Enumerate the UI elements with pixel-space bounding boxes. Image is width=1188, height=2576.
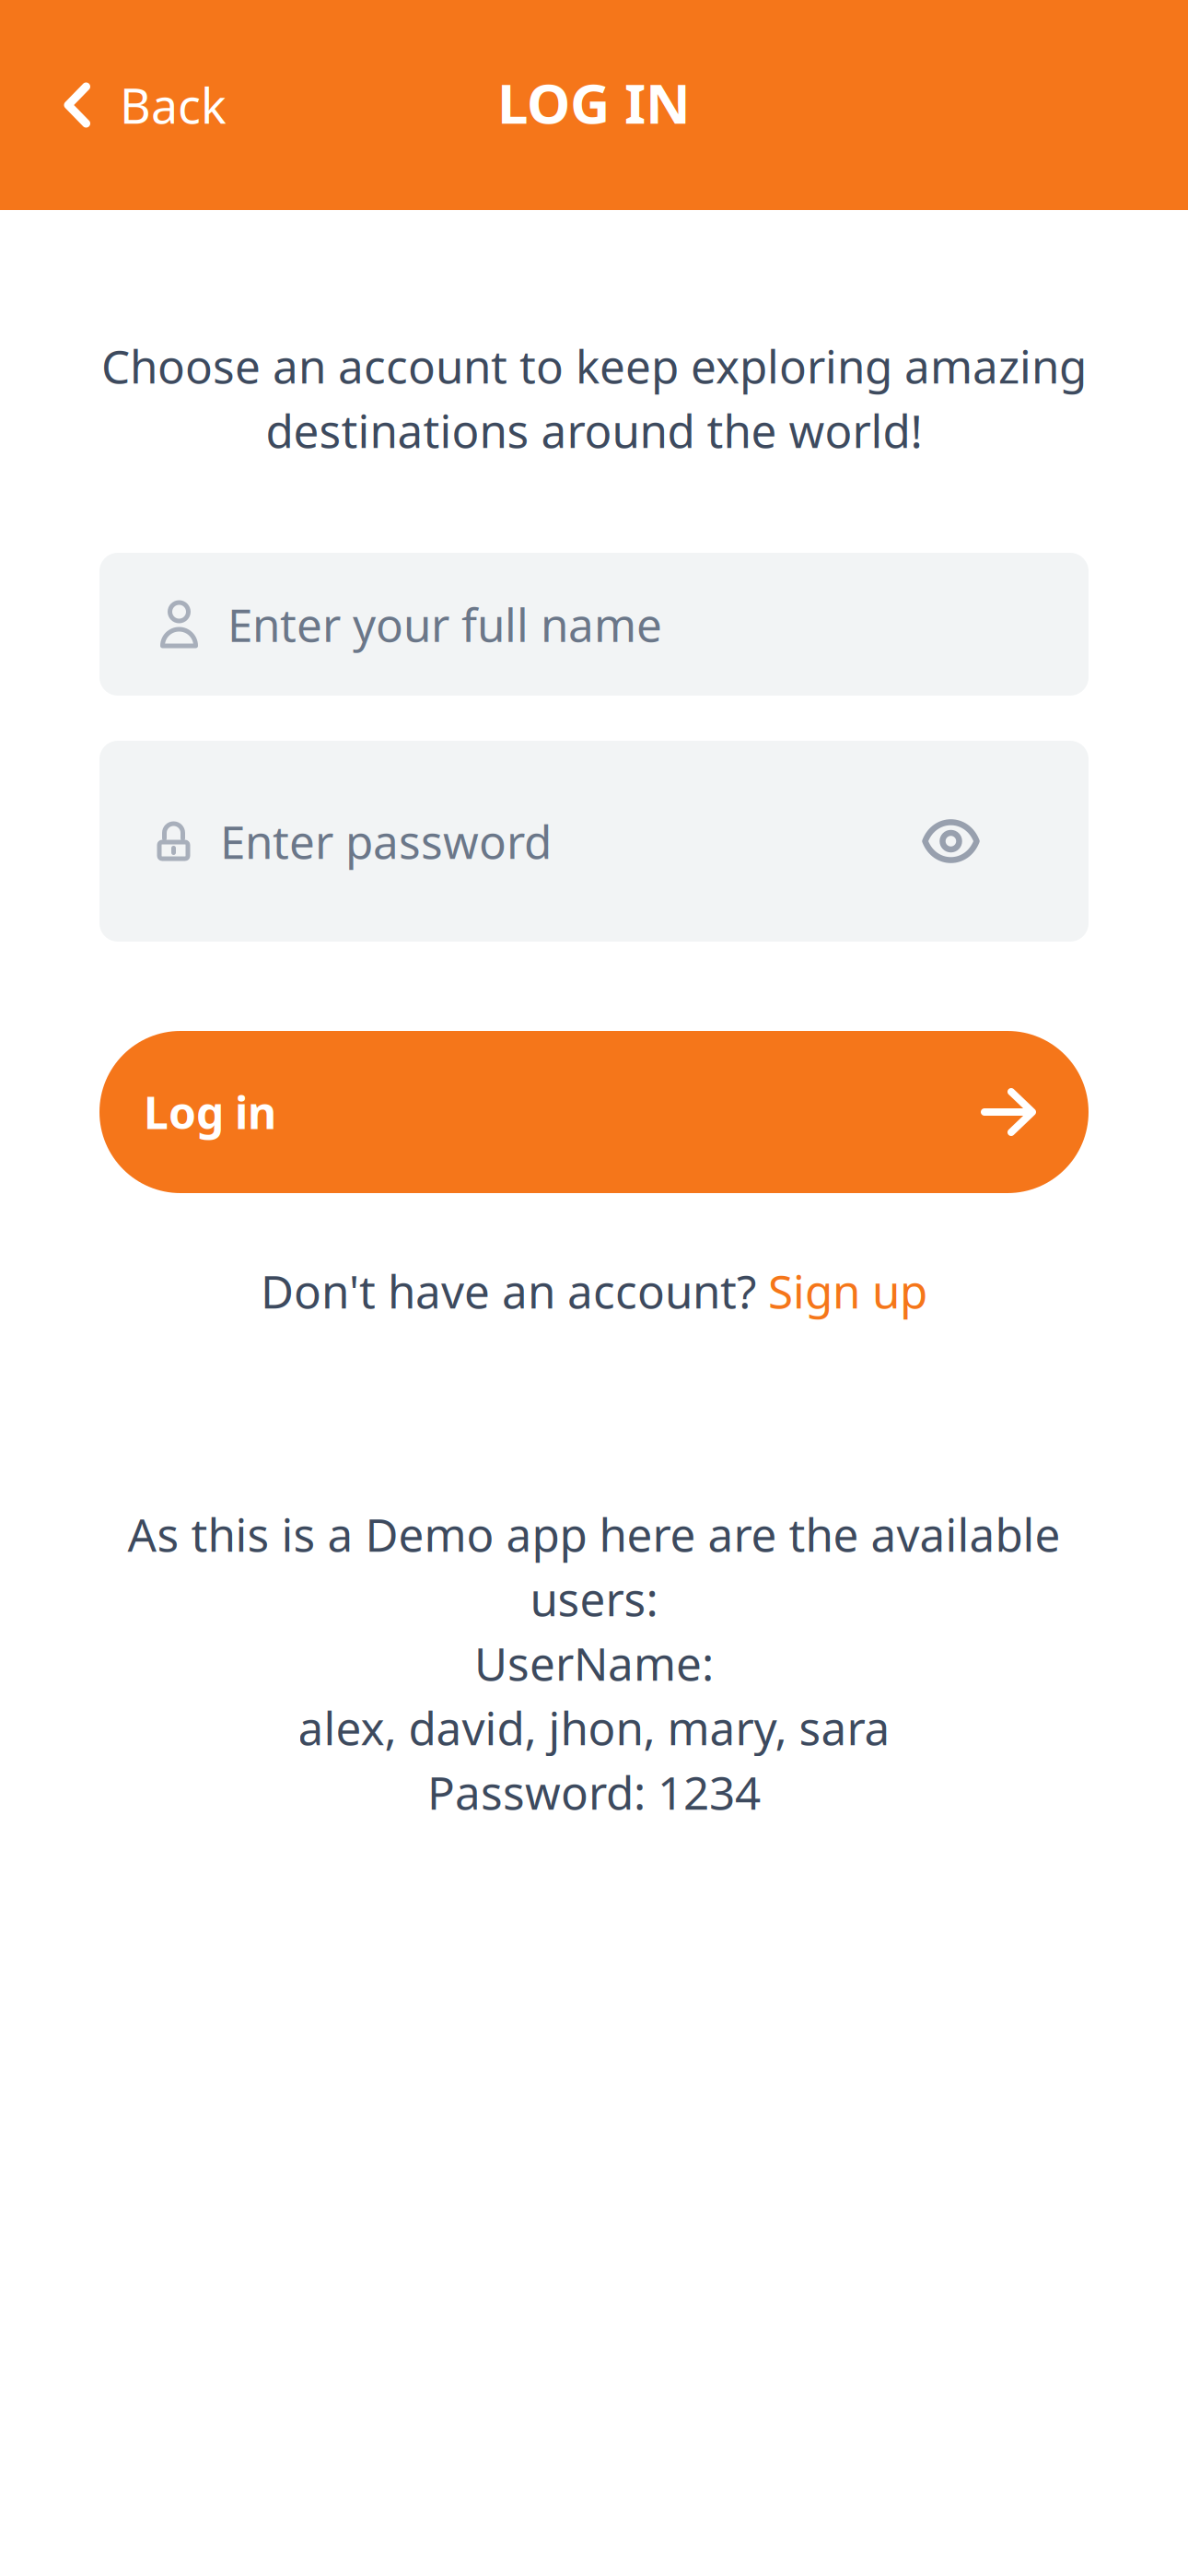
button[interactable]: Back xyxy=(0,0,254,210)
staticText: Log in xyxy=(144,1083,276,1141)
staticText: Enter password xyxy=(220,811,552,871)
staticText: Back xyxy=(120,73,227,137)
staticText: Password: 1234 xyxy=(427,1762,761,1822)
staticText: Enter your full name xyxy=(227,594,662,654)
staticText: UserName: xyxy=(474,1633,714,1693)
staticText: users: xyxy=(530,1568,658,1629)
button[interactable]: Enter password xyxy=(99,741,909,942)
staticText: alex, david, jhon, mary, sara xyxy=(298,1697,890,1758)
staticText: Choose an account to keep exploring amaz… xyxy=(101,336,1087,396)
button[interactable]: Enter your full name xyxy=(99,553,1089,696)
staticText: LOG IN xyxy=(497,66,691,139)
button[interactable]: Sign up xyxy=(768,1261,927,1321)
button[interactable]: Log in xyxy=(99,1031,1089,1193)
staticText: Sign up xyxy=(768,1261,927,1321)
button[interactable]: Show password xyxy=(909,801,993,882)
staticText: As this is a Demo app here are the avail… xyxy=(128,1504,1060,1564)
staticText: Don't have an account? xyxy=(261,1261,768,1321)
staticText: destinations around the world! xyxy=(266,400,922,460)
